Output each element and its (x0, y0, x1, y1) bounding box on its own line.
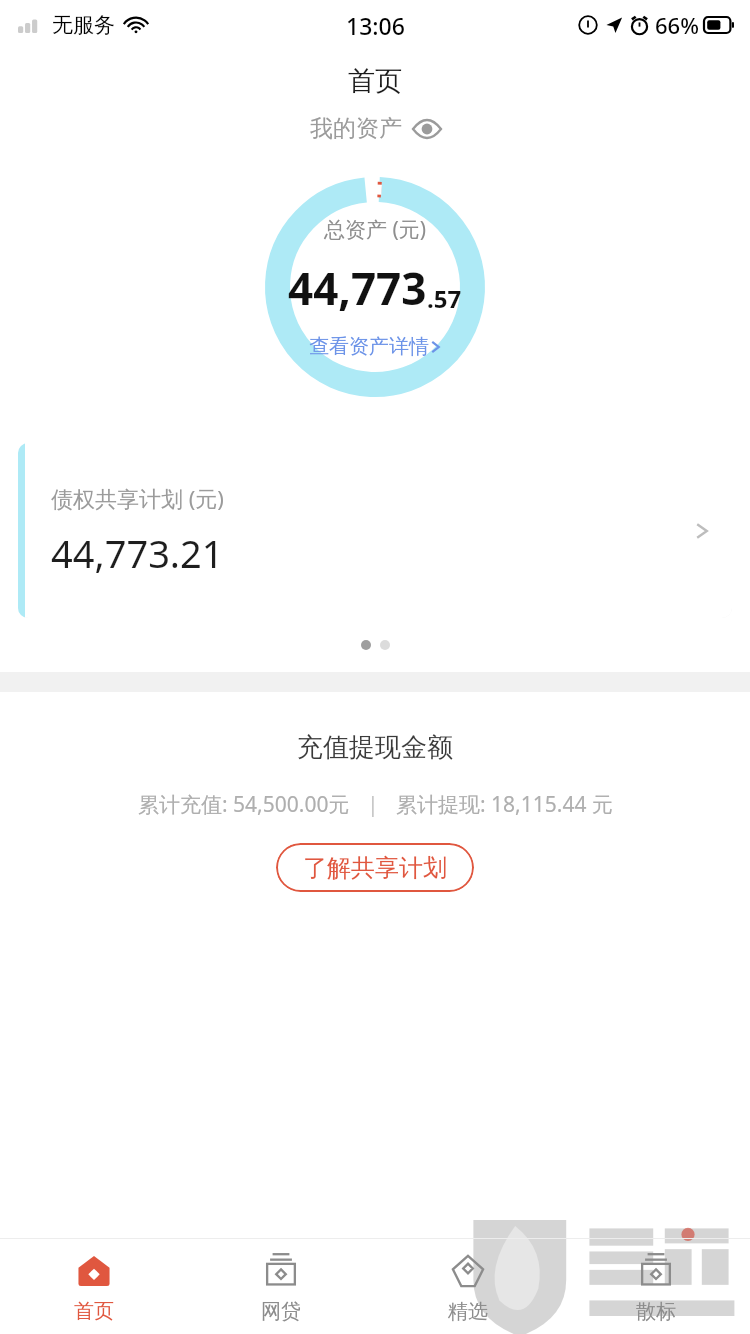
button[interactable]: 网贷 (187, 1239, 374, 1334)
button[interactable]: 精选 (374, 1239, 562, 1334)
staticText: 查看资产详情 (309, 334, 429, 359)
button[interactable]: 债权共享计划 (元) (18, 443, 732, 618)
staticText: 首页 (348, 64, 402, 98)
staticText: 散标 (636, 1299, 676, 1324)
staticText: 首页 (74, 1299, 114, 1324)
button[interactable]: 散标 (562, 1239, 750, 1334)
staticText: 无服务 (52, 12, 115, 38)
staticText: | (367, 790, 379, 819)
staticText: 13:06 (346, 10, 405, 41)
staticText: 网贷 (261, 1299, 301, 1324)
staticText: 债权共享计划 (元) (51, 483, 224, 513)
staticText: 44,773 (288, 258, 427, 318)
button[interactable]: 了解共享计划 (276, 843, 474, 892)
staticText: 累计充值: 54,500.00元 (138, 790, 350, 819)
staticText: 总资产 (元) (324, 215, 427, 244)
button[interactable]: 首页 (0, 1239, 187, 1334)
staticText: 我的资产 (310, 114, 402, 143)
button[interactable]: 我的资产 (0, 114, 750, 143)
staticText: 66% (655, 10, 699, 40)
button[interactable]: 查看资产详情 (309, 334, 442, 359)
staticText: 累计提现: 18,115.44 元 (396, 790, 613, 819)
staticText: 充值提现金额 (297, 731, 453, 764)
staticText: .57 (427, 282, 462, 315)
staticText: 精选 (448, 1299, 488, 1324)
staticText: 了解共享计划 (303, 853, 447, 883)
staticText: 44,773.21 (51, 527, 224, 579)
